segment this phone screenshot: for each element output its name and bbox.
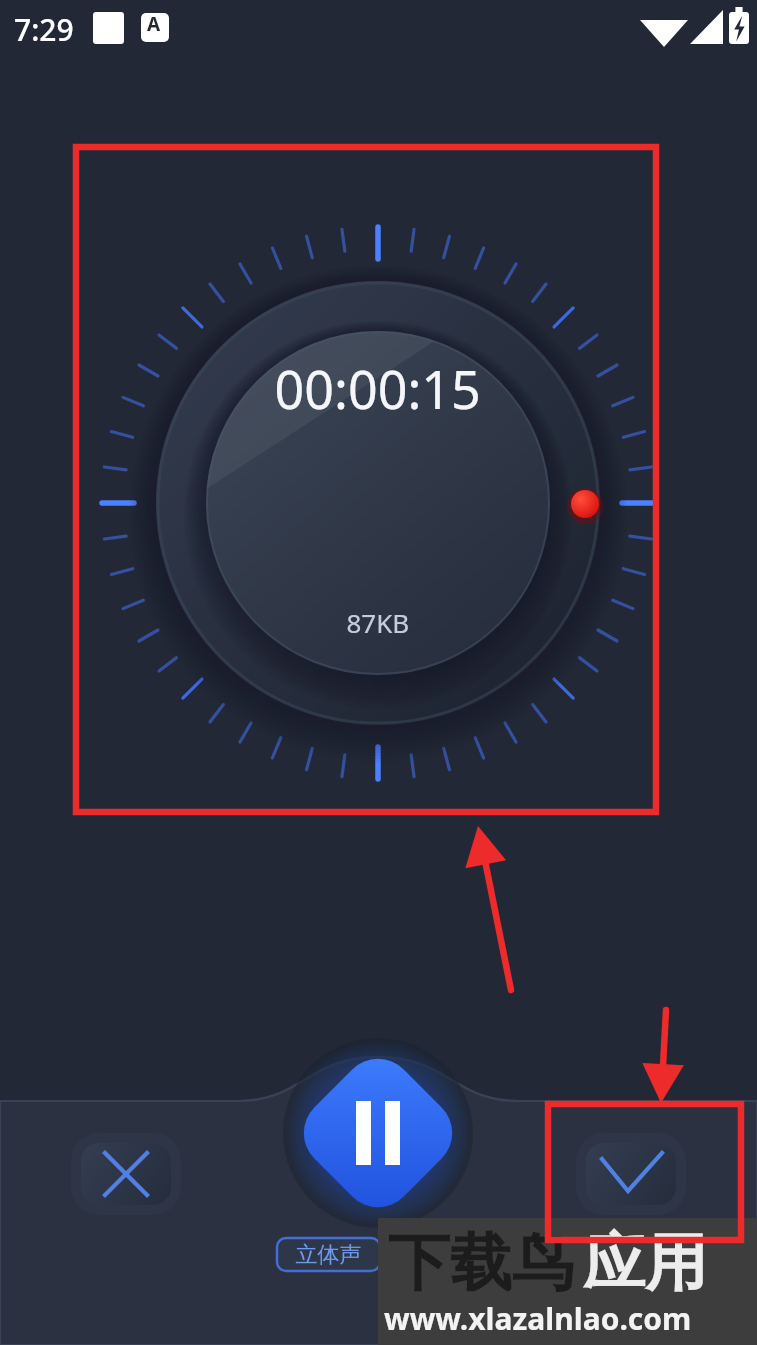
button[interactable]: Cancel bbox=[81, 1143, 171, 1205]
button[interactable]: Pause bbox=[315, 1070, 441, 1196]
button[interactable]: Done bbox=[586, 1143, 676, 1205]
button[interactable]: Recording dial bbox=[156, 281, 600, 725]
button[interactable] bbox=[277, 1238, 380, 1271]
